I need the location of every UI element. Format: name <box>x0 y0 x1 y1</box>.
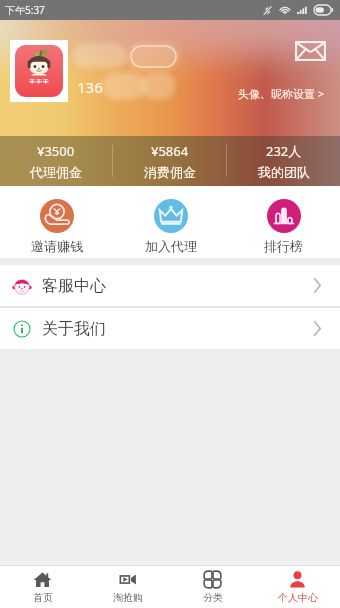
staticText: 分类 <box>203 591 223 604</box>
button[interactable]: 首页 <box>0 566 85 608</box>
staticText: 代理佣金 <box>30 164 82 180</box>
staticText: 客服中心 <box>42 276 106 296</box>
button[interactable] <box>15 45 63 97</box>
button[interactable]: 232人 <box>227 136 340 186</box>
button[interactable]: 关于我们 <box>0 308 340 349</box>
button[interactable]: 排行榜 <box>227 186 340 258</box>
staticText: 排行榜 <box>264 238 303 254</box>
button[interactable]: ¥5864 <box>113 136 226 186</box>
button[interactable]: Messages <box>291 37 329 65</box>
staticText: 消费佣金 <box>144 164 196 180</box>
staticText: 136 <box>77 77 103 97</box>
staticText: 个人中心 <box>278 591 318 604</box>
button[interactable]: 客服中心 <box>0 265 340 306</box>
button[interactable]: 分类 <box>170 566 255 608</box>
button[interactable]: 个人中心 <box>255 566 340 608</box>
staticText: 加入代理 <box>145 238 197 254</box>
staticText: 邀请赚钱 <box>31 238 83 254</box>
staticText: ¥5864 <box>151 142 189 160</box>
button[interactable]: 淘抢购 <box>85 566 170 608</box>
button[interactable]: 加入代理 <box>114 186 227 258</box>
staticText: 下午5:37 <box>5 3 45 17</box>
button[interactable]: 头像、昵称设置 > <box>238 86 325 101</box>
staticText: 首页 <box>33 591 53 604</box>
staticText: 我的团队 <box>258 164 310 180</box>
button[interactable]: ¥3500 <box>0 136 112 186</box>
staticText: ¥3500 <box>37 142 75 160</box>
staticText: 232人 <box>266 142 302 160</box>
staticText: 淘抢购 <box>113 591 143 604</box>
staticText: 关于我们 <box>42 319 106 339</box>
button[interactable]: 邀请赚钱 <box>0 186 114 258</box>
